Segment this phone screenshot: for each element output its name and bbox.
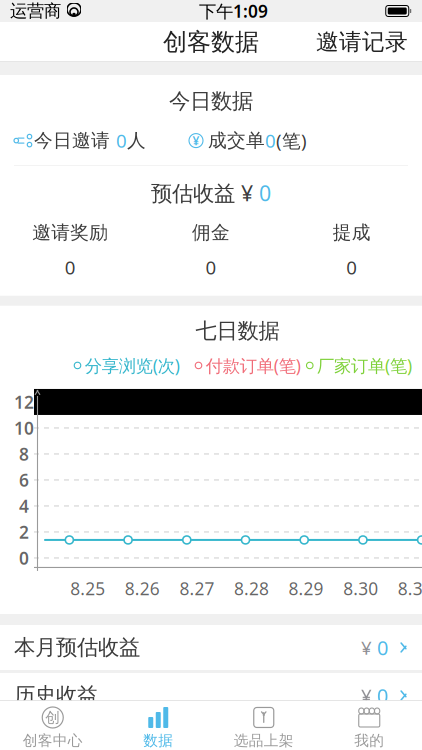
staticText: 人 [127,129,146,152]
staticText: 0 [265,128,276,153]
staticText: 0 [65,255,76,280]
staticText: 本月预估收益 [14,634,140,661]
staticText: 0 [259,179,271,207]
staticText: 历史收益 [14,682,98,709]
staticText: 付款订单(笔) [206,354,301,377]
staticText: 今日数据 [169,88,253,114]
staticText: 0 [116,128,127,153]
button[interactable]: 邀请记录 [302,22,422,62]
staticText: 0 [205,255,216,280]
staticText: 6 [19,468,29,491]
button[interactable]: 创 [0,706,105,750]
staticText: ¥ [361,683,377,708]
staticText: 8.25 [70,577,105,600]
staticText: 0 [377,634,388,661]
staticText: 10 [14,416,34,439]
staticText: 邀请奖励 [32,221,108,244]
staticText: 成交单 [208,129,265,152]
button[interactable]: 本月预估收益 [0,625,422,670]
staticText: ¥ [192,133,199,148]
staticText: 七日数据 [195,318,279,344]
staticText: 0 [346,255,357,280]
staticText: 佣金 [192,221,230,244]
staticText: 12 [14,390,34,413]
staticText: 创客数据 [163,27,259,57]
staticText: (笔) [276,128,307,153]
staticText: 8.28 [234,577,269,600]
staticText: 预估收益 ¥ [151,179,259,207]
button[interactable]: 我的 [316,706,422,750]
staticText: 2 [19,520,29,543]
staticText: 8.27 [179,577,214,600]
staticText: 创 [45,708,60,726]
staticText: 0 [377,682,388,709]
button[interactable]: 选品上架 [211,706,316,750]
staticText: 选品上架 [234,731,294,749]
staticText: 提成 [333,221,371,244]
staticText: 数据 [143,731,173,749]
staticText: ¥ [361,635,377,660]
staticText: 8.30 [343,577,378,600]
staticText: 0 [19,546,29,569]
button[interactable]: 历史收益 [0,673,422,718]
staticText: 8.31 [398,577,422,600]
staticText: 厂家订单(笔) [317,354,412,377]
staticText: 创客中心 [23,731,83,749]
staticText: 今日邀请 [34,129,116,152]
staticText: 下午1:09 [199,0,268,22]
staticText: 4 [19,494,29,517]
staticText: 8.29 [289,577,324,600]
staticText: 运营商 [10,0,61,22]
staticText: 分享浏览(次) [85,354,180,377]
staticText: 邀请记录 [316,28,408,56]
button[interactable]: 数据 [105,706,211,750]
staticText: 8.26 [125,577,160,600]
staticText: 我的 [354,731,384,749]
staticText: 8 [19,442,29,465]
